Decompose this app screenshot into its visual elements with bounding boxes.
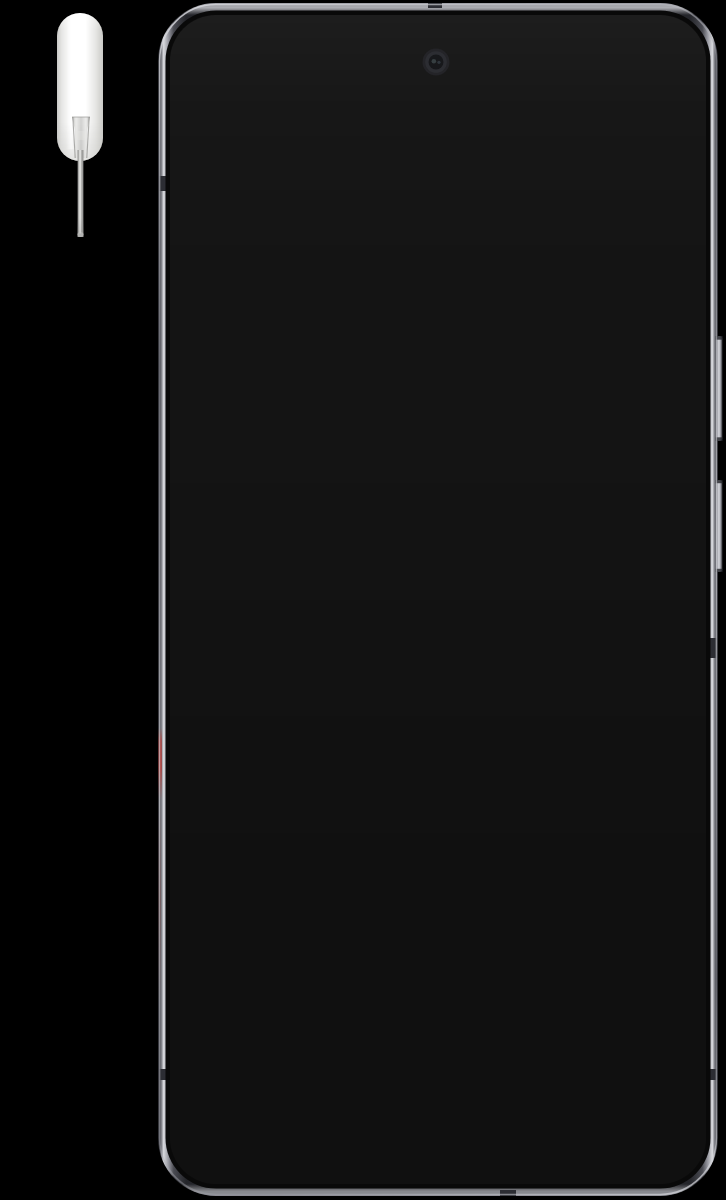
button[interactable]: Smartphone and SIM ejector tool product …	[0, 0, 726, 1200]
